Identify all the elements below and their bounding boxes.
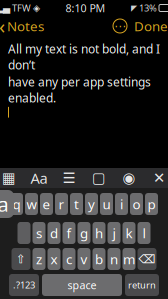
staticText: Notes (7, 17, 44, 35)
button[interactable]: j (107, 222, 120, 244)
staticText: ▦ (2, 170, 16, 186)
staticText: return (128, 279, 156, 291)
staticText: space (67, 278, 96, 292)
button[interactable]: y (85, 193, 98, 215)
staticText: Aa (30, 168, 47, 188)
staticText: e (42, 195, 50, 213)
button[interactable]: c (62, 248, 75, 270)
staticText: TFW (12, 2, 31, 14)
staticText: ◤ (131, 3, 137, 13)
button[interactable]: t (70, 193, 83, 215)
staticText: x (50, 250, 57, 268)
button[interactable]: f (62, 222, 75, 244)
staticText: z (36, 250, 42, 268)
button[interactable]: o (130, 193, 143, 215)
button[interactable]: d (47, 222, 60, 244)
staticText: o (132, 195, 140, 213)
button[interactable]: x (47, 248, 60, 270)
staticText: j (112, 224, 115, 242)
staticText: u (102, 195, 110, 213)
button[interactable]: Done (127, 15, 168, 37)
staticText: n (110, 250, 118, 268)
staticText: ⋯ (114, 19, 126, 33)
staticText: y (88, 195, 95, 213)
button[interactable]: k (122, 222, 135, 244)
staticText: b (95, 250, 103, 268)
button[interactable]: b (92, 248, 105, 270)
staticText: ⇧ (16, 252, 26, 266)
button[interactable]: i (115, 193, 128, 215)
staticText: w (26, 195, 36, 213)
staticText: d (50, 224, 58, 242)
button[interactable]: ☰ (58, 169, 80, 187)
staticText: ✕ (153, 170, 165, 186)
staticText: ▢ (92, 170, 106, 186)
staticText: ⌫ (138, 252, 155, 266)
staticText: a (0, 191, 8, 217)
staticText: Done (134, 17, 168, 35)
staticText: v (80, 250, 87, 268)
staticText: ◈ (33, 3, 40, 13)
button[interactable]: l (137, 222, 150, 244)
staticText: c (66, 250, 72, 268)
button[interactable]: space (42, 274, 122, 296)
staticText: All my text is not bold, and I don’t (8, 41, 160, 73)
staticText: k (125, 224, 132, 242)
button[interactable]: ‹ (0, 11, 50, 41)
staticText: 13% (139, 2, 157, 14)
button[interactable]: q (10, 193, 23, 215)
staticText: f (66, 224, 71, 242)
staticText: 8:10 PM (65, 1, 105, 15)
button[interactable]: z (32, 248, 45, 270)
button[interactable]: ⇧ (11, 248, 30, 270)
button[interactable]: ✕ (148, 169, 168, 187)
staticText: g (80, 224, 88, 242)
button[interactable]: ◉ (118, 169, 140, 187)
staticText: ‹ (0, 13, 5, 39)
staticText: ▂▄ (0, 3, 10, 13)
staticText: t (74, 195, 79, 213)
button[interactable]: h (92, 222, 105, 244)
button[interactable]: return (125, 274, 159, 296)
button[interactable]: w (25, 193, 38, 215)
staticText: ☰ (62, 170, 75, 186)
staticText: m (123, 250, 135, 268)
button[interactable]: r (55, 193, 68, 215)
button[interactable]: p (145, 193, 158, 215)
button[interactable]: e (40, 193, 53, 215)
button[interactable]: ▢ (88, 169, 110, 187)
button[interactable]: More (113, 19, 127, 33)
staticText: r (58, 195, 64, 213)
button[interactable]: v (77, 248, 90, 270)
staticText: l (142, 224, 145, 242)
staticText: have any per app settings enabled. (8, 74, 151, 106)
button[interactable]: m (122, 248, 135, 270)
button[interactable]: u (100, 193, 113, 215)
staticText: q (12, 195, 20, 213)
staticText: h (95, 224, 103, 242)
staticText: .?123 (13, 279, 35, 291)
button[interactable]: ⌫ (137, 248, 156, 270)
button[interactable]: s (32, 222, 45, 244)
button[interactable]: ▦ (0, 169, 20, 187)
staticText: s (36, 224, 42, 242)
button[interactable]: Aa (28, 169, 50, 187)
staticText: ◉ (122, 170, 135, 186)
button[interactable]: .?123 (9, 274, 39, 296)
button[interactable]: n (107, 248, 120, 270)
staticText: i (120, 195, 123, 213)
button[interactable]: g (77, 222, 90, 244)
staticText: p (147, 195, 155, 213)
